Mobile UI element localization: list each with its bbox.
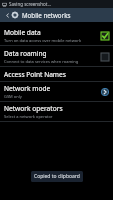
staticText: Mobile networks	[22, 11, 71, 19]
staticText: Data roaming	[4, 49, 47, 58]
staticText: Copied to clipboard	[34, 173, 80, 180]
button[interactable]: Copied to clipboard	[31, 171, 83, 182]
staticText: Network mode	[4, 84, 51, 93]
button[interactable]: Access Point Names	[0, 67, 113, 81]
button[interactable]: Network mode	[0, 82, 113, 101]
staticText: Saving screenshot...	[9, 1, 52, 7]
button[interactable]: Data roaming	[0, 46, 113, 66]
staticText: Select a network operator	[4, 114, 53, 119]
staticText: GSM only	[4, 94, 22, 99]
other: Open	[100, 87, 109, 96]
staticText: Mobile data	[4, 28, 41, 37]
button[interactable]: Mobile data	[0, 25, 113, 45]
button[interactable]: Back	[0, 8, 113, 22]
staticText: Connect to data services when roaming	[4, 59, 79, 64]
other: Unchecked	[100, 52, 109, 61]
staticText: Access Point Names	[4, 70, 66, 79]
staticText: Network operators	[4, 104, 63, 113]
other: Back	[3, 11, 11, 19]
staticText: Turn on data access over mobile network	[4, 38, 82, 43]
button[interactable]: Network operators	[0, 102, 113, 121]
other: Checked	[100, 31, 109, 40]
